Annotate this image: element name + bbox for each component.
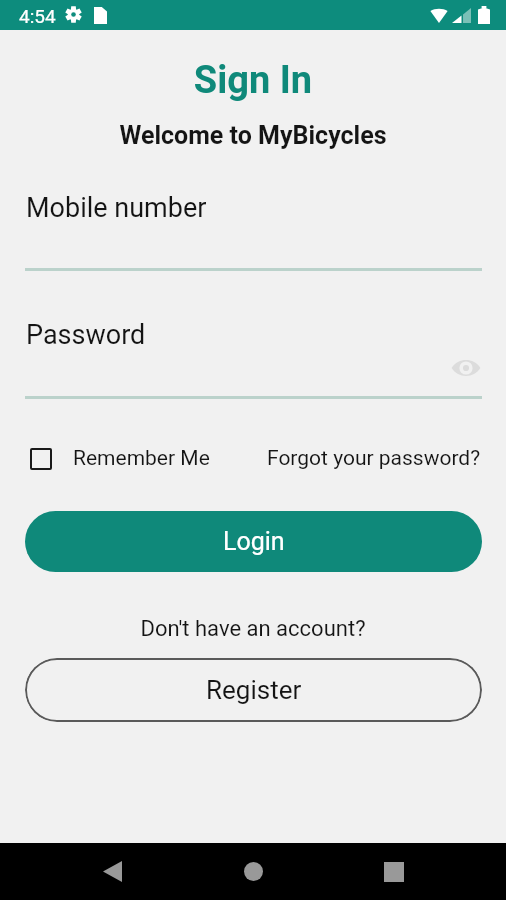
button[interactable]: Remember Me — [30, 446, 210, 471]
staticText: 4:54 — [19, 5, 56, 27]
staticText: Don't have an account? — [0, 616, 506, 642]
button[interactable]: Register — [25, 658, 482, 722]
button[interactable]: Back — [84, 847, 141, 896]
staticText: Register — [206, 675, 302, 705]
button[interactable]: Home — [225, 847, 282, 896]
staticText: Login — [223, 527, 285, 556]
button[interactable]: Toggle password visibility — [449, 355, 483, 381]
button[interactable]: Recent apps — [365, 847, 422, 896]
staticText: Remember Me — [73, 446, 210, 471]
staticText: Welcome to MyBicycles — [0, 121, 506, 150]
staticText: Sign In — [0, 58, 506, 103]
button[interactable]: Forgot your password? — [267, 446, 481, 471]
staticText: Password — [26, 319, 146, 351]
staticText: Forgot your password? — [267, 446, 481, 471]
button[interactable]: Login — [25, 511, 482, 572]
staticText: Mobile number — [26, 192, 207, 224]
